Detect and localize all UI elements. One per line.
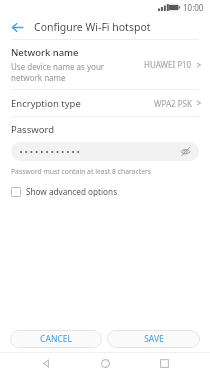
staticText: 10:00 bbox=[183, 2, 204, 13]
staticText: Password bbox=[11, 123, 54, 136]
button[interactable]: Show password bbox=[11, 142, 199, 161]
button[interactable]: Show password bbox=[179, 145, 192, 158]
staticText: Network name bbox=[11, 46, 79, 59]
staticText: Encryption type bbox=[11, 97, 154, 110]
button[interactable]: SAVE bbox=[107, 330, 200, 348]
button[interactable]: Show advanced options bbox=[0, 176, 210, 203]
staticText: Show advanced options bbox=[26, 186, 118, 197]
staticText: SAVE bbox=[144, 333, 164, 345]
button[interactable]: Encryption type bbox=[0, 90, 210, 116]
staticText: Use device name as your network name bbox=[11, 61, 131, 83]
staticText: Password must contain at least 8 charact… bbox=[11, 167, 152, 176]
button[interactable]: Recent apps bbox=[151, 353, 177, 373]
staticText: CANCEL bbox=[40, 333, 72, 345]
staticText: Configure Wi-Fi hotspot bbox=[34, 20, 151, 34]
staticText: HUAWEI P10 bbox=[144, 59, 192, 70]
button[interactable]: Home bbox=[92, 353, 118, 373]
button[interactable]: Back bbox=[0, 15, 34, 39]
staticText: WPA2 PSK bbox=[154, 98, 192, 109]
button[interactable]: CANCEL bbox=[10, 330, 102, 348]
button[interactable]: Back bbox=[33, 353, 59, 373]
button[interactable]: Network name bbox=[0, 40, 210, 89]
